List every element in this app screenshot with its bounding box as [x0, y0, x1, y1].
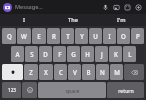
staticText: H — [85, 50, 90, 58]
button[interactable]: return — [107, 82, 144, 98]
button[interactable]: U — [89, 28, 102, 44]
staticText: W — [21, 32, 27, 40]
staticText: F — [58, 50, 62, 58]
button[interactable]: I — [103, 28, 116, 44]
staticText: T — [66, 32, 70, 40]
staticText: I — [23, 16, 25, 24]
staticText: A — [15, 50, 20, 58]
staticText: E — [37, 32, 41, 40]
staticText: G — [71, 50, 76, 58]
staticText: X — [44, 68, 48, 76]
staticText: Y — [80, 32, 84, 40]
button[interactable]: Stickers — [123, 3, 132, 12]
staticText: R — [52, 32, 56, 40]
button[interactable]: Backspace — [124, 64, 144, 80]
staticText: V — [73, 68, 77, 76]
button[interactable]: C — [54, 64, 67, 80]
button[interactable]: T — [61, 28, 74, 44]
button[interactable]: Voice message — [101, 3, 110, 12]
button[interactable]: N — [96, 64, 109, 80]
button[interactable]: space — [38, 82, 106, 98]
button[interactable]: More options — [134, 3, 143, 12]
button[interactable]: D — [39, 46, 52, 62]
button[interactable]: W — [17, 28, 31, 44]
staticText: Z — [29, 68, 33, 76]
staticText: K — [114, 50, 118, 58]
staticText: Q — [7, 32, 12, 40]
staticText: L — [128, 50, 132, 58]
button[interactable]: S — [25, 46, 38, 62]
staticText: B — [86, 68, 91, 76]
button[interactable]: A — [11, 46, 24, 62]
staticText: J — [101, 50, 103, 58]
button[interactable]: H — [81, 46, 94, 62]
button[interactable]: L — [123, 46, 136, 62]
button[interactable]: R — [47, 28, 60, 44]
staticText: return — [118, 87, 134, 94]
staticText: C — [59, 68, 63, 76]
staticText: I — [108, 32, 111, 40]
staticText: I'm — [117, 16, 126, 24]
button[interactable]: X — [39, 64, 53, 80]
button[interactable]: Shift — [2, 64, 23, 80]
button[interactable]: P — [131, 28, 144, 44]
button[interactable]: G — [67, 46, 80, 62]
staticText: P — [136, 32, 140, 40]
staticText: O — [121, 32, 126, 40]
staticText: N — [100, 68, 105, 76]
staticText: space — [65, 87, 80, 94]
button[interactable]: Y — [75, 28, 88, 44]
staticText: S — [30, 50, 34, 58]
button[interactable]: The — [48, 14, 97, 26]
button[interactable]: M — [110, 64, 123, 80]
button[interactable]: I'm — [97, 14, 146, 26]
button[interactable]: B — [82, 64, 95, 80]
button[interactable]: K — [109, 46, 122, 62]
button[interactable]: 123 — [2, 82, 21, 98]
button[interactable]: V — [68, 64, 81, 80]
staticText: Message... — [15, 3, 43, 11]
button[interactable]: Q — [2, 28, 16, 44]
button[interactable]: F — [53, 46, 66, 62]
button[interactable]: Z — [24, 64, 38, 80]
button[interactable]: I — [0, 14, 48, 26]
button[interactable]: Camera — [3, 3, 12, 12]
staticText: D — [43, 50, 48, 58]
button[interactable]: Gallery — [112, 3, 121, 12]
button[interactable]: J — [95, 46, 108, 62]
staticText: U — [93, 32, 98, 40]
staticText: 123 — [8, 87, 16, 93]
staticText: The — [68, 16, 78, 24]
button[interactable]: E — [32, 28, 46, 44]
button[interactable]: O — [117, 28, 130, 44]
button[interactable]: Emoji — [22, 82, 37, 98]
staticText: M — [114, 68, 120, 76]
